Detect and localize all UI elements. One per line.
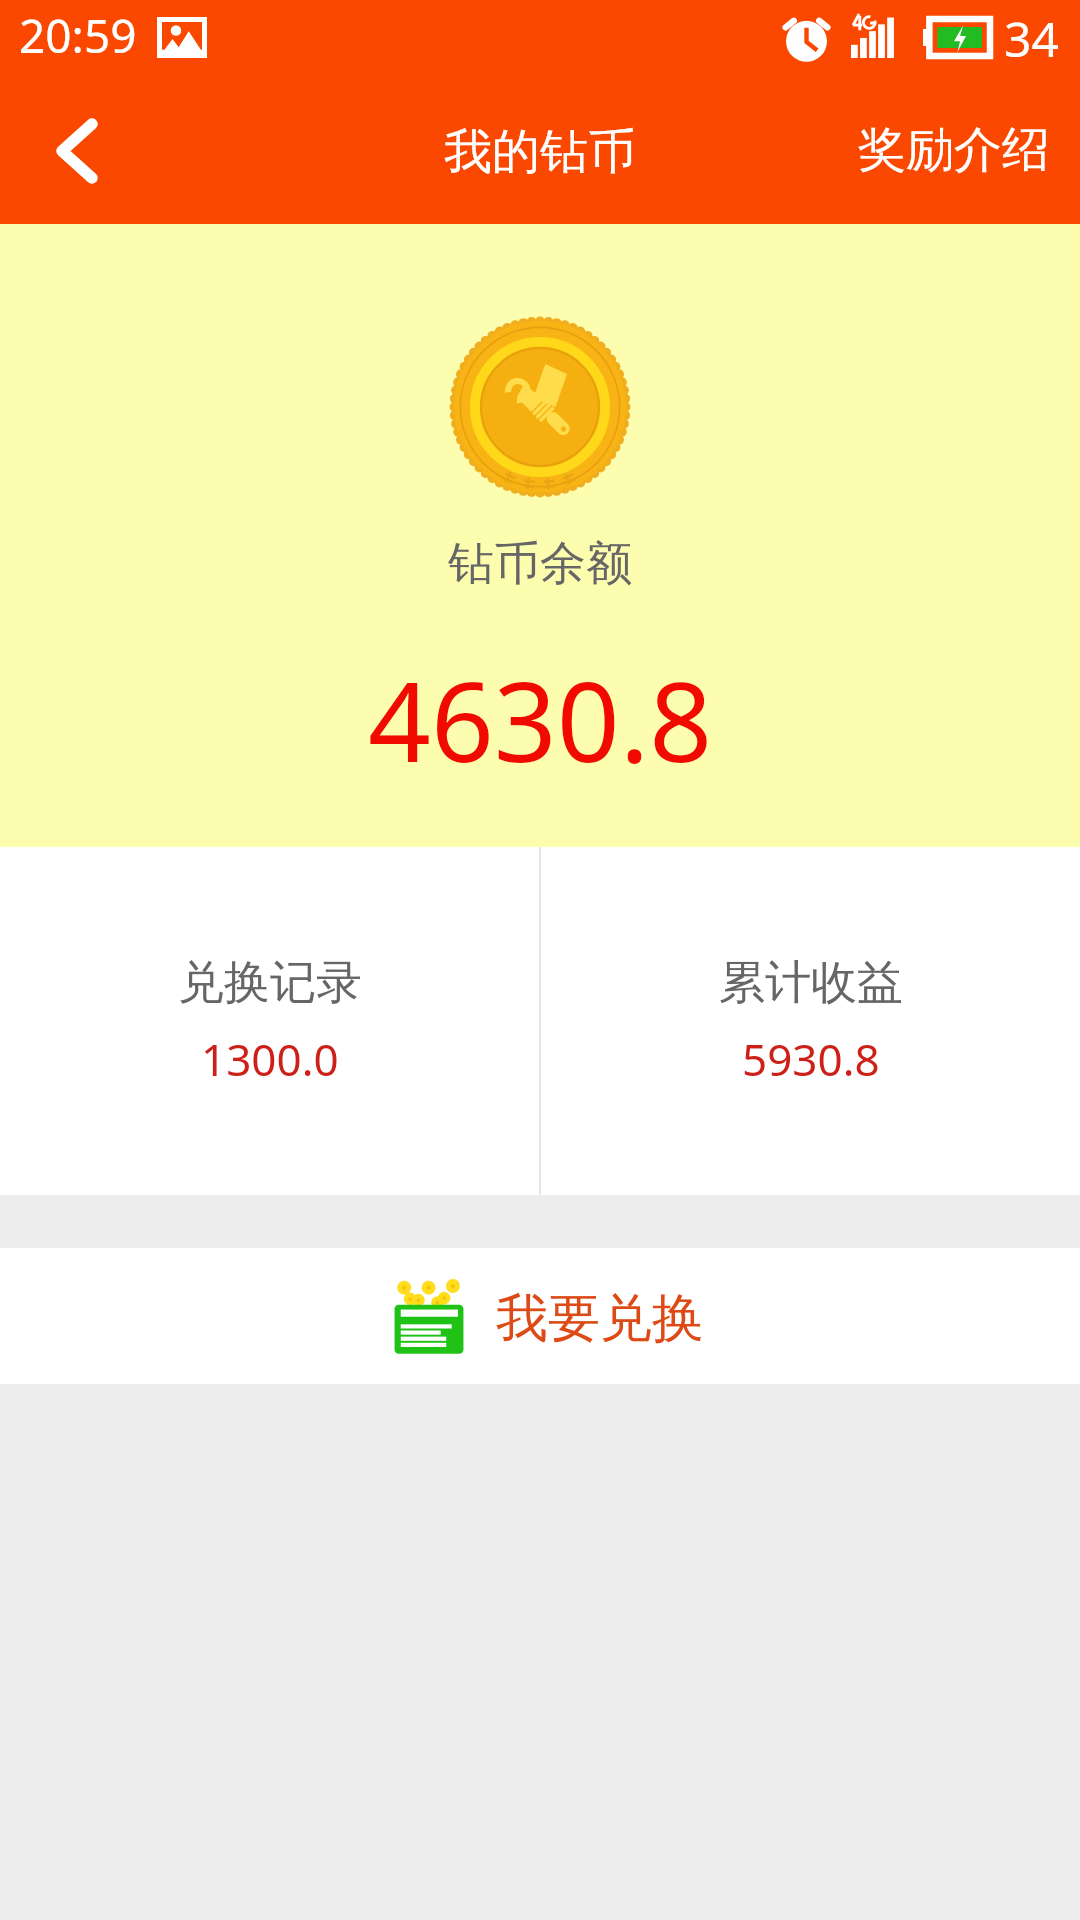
staticText: 累计收益	[719, 954, 903, 1012]
button[interactable]: 兑换记录	[0, 847, 539, 1195]
staticText: 兑换记录	[178, 954, 362, 1012]
staticText: 1300.0	[201, 1029, 339, 1089]
button[interactable]: Back	[10, 72, 136, 224]
staticText: 5930.8	[742, 1029, 880, 1089]
staticText: 4630.8	[368, 644, 713, 794]
staticText: 34	[1004, 6, 1059, 71]
staticText: 我的钻币	[444, 122, 636, 182]
staticText: 20:59	[19, 4, 137, 67]
button[interactable]: 累计收益	[541, 847, 1080, 1195]
staticText: 我要兑换	[496, 1286, 704, 1352]
button[interactable]: 奖励介绍	[828, 94, 1080, 202]
button[interactable]: 我要兑换	[0, 1248, 1080, 1384]
staticText: 钻币余额	[448, 535, 632, 593]
staticText: 奖励介绍	[858, 120, 1050, 180]
